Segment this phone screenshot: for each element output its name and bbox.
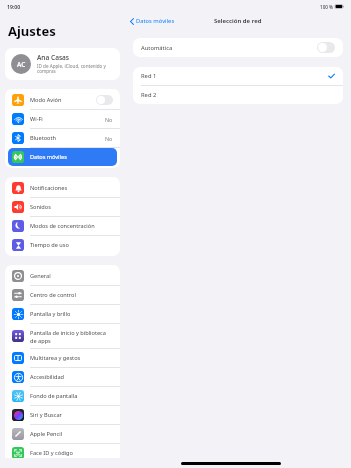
staticText: Centro de control (30, 291, 113, 299)
staticText: Wi-Fi (30, 115, 105, 123)
staticText: Pantalla de inicio y biblioteca de apps (30, 329, 113, 344)
staticText: No (105, 116, 113, 123)
button[interactable]: Bluetooth (5, 129, 120, 147)
staticText: Multitarea y gestos (30, 354, 113, 362)
button[interactable]: Multitarea y gestos (5, 349, 120, 367)
button[interactable]: Accesibilidad (5, 368, 120, 386)
button[interactable]: Wi-Fi (5, 110, 120, 128)
button[interactable]: General (5, 267, 120, 285)
staticText: Ana Casas (37, 53, 70, 62)
button[interactable]: Apple Pencil (5, 425, 120, 443)
staticText: Automática (141, 44, 317, 52)
staticText: Modos de concentración (30, 222, 113, 230)
button[interactable]: Modo Avión (5, 91, 120, 109)
button[interactable]: Pantalla de inicio y biblioteca de apps (5, 324, 120, 348)
staticText: Datos móviles (30, 153, 110, 161)
staticText: Red 2 (141, 91, 335, 99)
staticText: Bluetooth (30, 134, 105, 142)
button[interactable]: Automática (317, 42, 335, 53)
staticText: Red 1 (141, 72, 328, 80)
staticText: General (30, 272, 113, 280)
staticText: Face ID y código (30, 449, 113, 457)
staticText: Datos móviles (136, 17, 175, 25)
staticText: Sonidos (30, 203, 113, 211)
button[interactable]: Tiempo de uso (5, 236, 120, 254)
button[interactable]: Modo Avión (96, 95, 113, 105)
staticText: Tiempo de uso (30, 241, 113, 249)
staticText: Selección de red (214, 17, 262, 25)
button[interactable]: Red 1 (133, 67, 343, 85)
button[interactable]: Pantalla y brillo (5, 305, 120, 323)
staticText: 100 % (320, 4, 333, 10)
staticText: No (105, 135, 113, 142)
button[interactable]: AC (5, 48, 120, 80)
staticText: ID de Apple, iCloud, contenido y compras (37, 63, 114, 75)
button[interactable]: Fondo de pantalla (5, 387, 120, 405)
staticText: Fondo de pantalla (30, 392, 113, 400)
staticText: Modo Avión (30, 96, 96, 104)
button[interactable]: Face ID y código (5, 444, 120, 458)
button[interactable]: Datos móviles (8, 148, 117, 166)
button[interactable]: Red 2 (133, 86, 343, 104)
button[interactable]: Sonidos (5, 198, 120, 216)
staticText: Pantalla y brillo (30, 310, 113, 318)
button[interactable]: Centro de control (5, 286, 120, 304)
staticText: Notificaciones (30, 184, 113, 192)
button[interactable]: Notificaciones (5, 179, 120, 197)
staticText: Siri y Buscar (30, 411, 113, 419)
staticText: Ajustes (8, 22, 56, 40)
staticText: Accesibilidad (30, 373, 113, 381)
button[interactable]: Siri y Buscar (5, 406, 120, 424)
staticText: AC (17, 60, 26, 69)
button[interactable]: Automática (133, 38, 343, 57)
button[interactable]: Modos de concentración (5, 217, 120, 235)
button[interactable]: Datos móviles (125, 15, 180, 27)
staticText: 19:00 (7, 3, 21, 10)
staticText: Apple Pencil (30, 430, 113, 438)
